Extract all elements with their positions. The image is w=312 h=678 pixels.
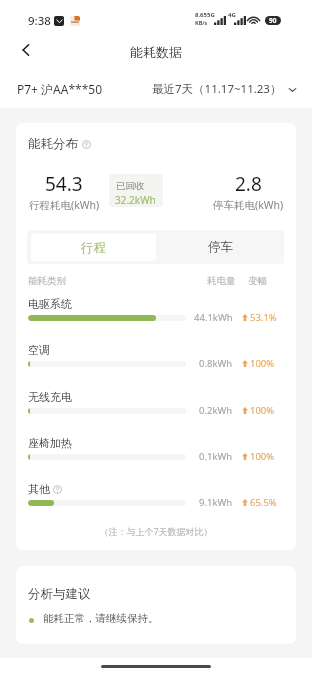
staticText: （注：与上个7天数据对比） — [16, 525, 296, 537]
staticText: 分析与建议 — [28, 586, 91, 602]
staticText: 最近7天（11.17~11.23） — [152, 81, 282, 97]
button[interactable]: 最近7天（11.17~11.23） — [152, 81, 298, 97]
staticText: 耗电量 — [207, 275, 236, 287]
button[interactable]: 停车 — [156, 230, 284, 264]
staticText: 能耗类别 — [28, 275, 66, 287]
staticText: 32.2kWh — [115, 193, 156, 207]
button[interactable]: 能耗分布 — [28, 136, 91, 152]
staticText: 100% — [250, 404, 275, 417]
staticText: P7+ 沪AA***50 — [17, 81, 103, 97]
staticText: 无线充电 — [28, 390, 72, 404]
staticText: 90 — [269, 16, 277, 25]
button[interactable]: 空调 — [28, 343, 50, 357]
staticText: 变幅 — [248, 275, 267, 287]
staticText: 行程 — [81, 240, 106, 256]
staticText: 100% — [250, 357, 275, 370]
staticText: 其他 — [28, 482, 50, 496]
button[interactable]: 无线充电 — [28, 390, 72, 404]
staticText: 4G — [228, 11, 236, 19]
staticText: 2.8 — [235, 171, 262, 197]
staticText: 53.1% — [250, 311, 277, 324]
staticText: 停车耗电(kWh) — [213, 198, 284, 212]
button[interactable]: Back — [8, 32, 44, 68]
staticText: 停车 — [208, 239, 233, 255]
button[interactable]: P7+ 沪AA***50 — [17, 81, 103, 97]
staticText: 9:38 — [28, 13, 51, 29]
staticText: 8.65 — [195, 11, 207, 19]
staticText: 0.2kWh — [199, 404, 233, 417]
staticText: 100% — [250, 450, 275, 463]
staticText: KB/s — [195, 19, 208, 26]
staticText: 54.3 — [45, 171, 83, 197]
staticText: 0.8kWh — [199, 357, 233, 370]
staticText: 能耗正常，请继续保持。 — [43, 612, 159, 625]
staticText: 0.1kWh — [199, 450, 233, 463]
staticText: 能耗数据 — [130, 44, 182, 60]
staticText: 9.1kWh — [199, 496, 233, 509]
staticText: 行程耗电(kWh) — [29, 198, 100, 212]
staticText: 65.5% — [250, 496, 277, 509]
staticText: 座椅加热 — [28, 436, 72, 450]
button[interactable]: 行程 — [31, 234, 156, 261]
staticText: 44.1kWh — [194, 311, 233, 324]
staticText: 电驱系统 — [28, 297, 72, 311]
button[interactable]: 其他 — [28, 482, 62, 496]
button[interactable]: 座椅加热 — [28, 436, 72, 450]
staticText: 5G — [207, 11, 215, 19]
staticText: 能耗分布 — [28, 136, 78, 152]
button[interactable]: 电驱系统 — [28, 297, 72, 311]
staticText: 已回收 — [116, 180, 145, 192]
staticText: 空调 — [28, 343, 50, 357]
